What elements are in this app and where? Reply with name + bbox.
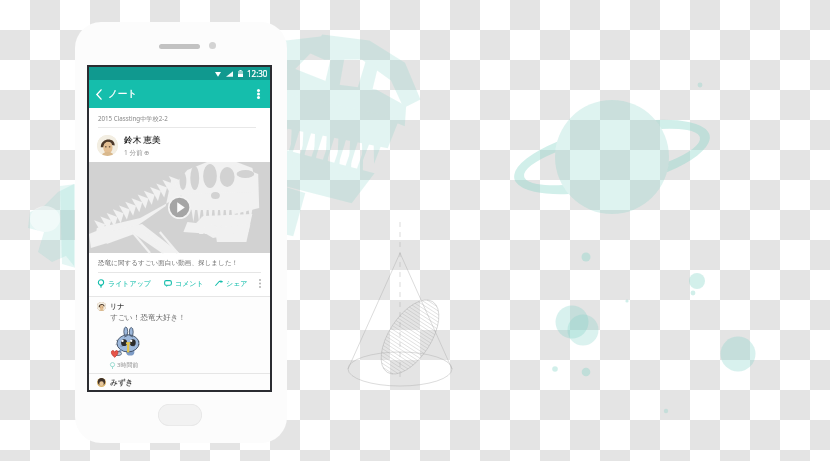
staticText: ライトアップ [108,279,151,288]
staticText: みずき [110,378,134,387]
button[interactable]: More [255,278,265,288]
staticText: コメント [175,279,204,288]
button[interactable]: 鈴木 恵美 [97,128,270,162]
staticText: シェア [226,279,248,288]
staticText: 恐竜に関するすごい面白い動画、探しました！ [98,259,239,267]
button[interactable]: More options [251,87,265,101]
staticText: 2015 Classting中学校2-2 [98,114,168,122]
button[interactable]: Back [96,88,138,100]
staticText: 12:30 [247,68,268,79]
button[interactable]: Play video [89,162,270,253]
button[interactable]: シェア [215,273,255,293]
staticText: 1 分前 ⊕ [124,148,150,157]
button[interactable]: ライトアップ [97,273,164,293]
button[interactable]: コメント [164,273,215,293]
staticText: リナ [110,302,125,311]
staticText: 3時間前 [117,361,139,369]
staticText: すごい！恐竜大好き！ [110,313,186,322]
other: Back [96,89,102,100]
staticText: 鈴木 恵美 [124,134,161,146]
staticText: ノート [108,88,138,100]
